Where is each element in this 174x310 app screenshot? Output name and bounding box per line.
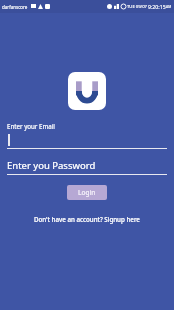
staticText: AM bbox=[166, 4, 172, 9]
button[interactable]: Login bbox=[67, 185, 107, 200]
staticText: Enter your Email bbox=[7, 122, 55, 130]
button[interactable]: Don't have an account? Signup here bbox=[32, 213, 142, 225]
button[interactable]: Enter you Password bbox=[7, 158, 167, 175]
button[interactable] bbox=[7, 133, 167, 149]
staticText: Enter you Password bbox=[7, 159, 96, 172]
staticText: 9:20:15 bbox=[148, 3, 166, 10]
staticText: darfanscore bbox=[2, 4, 28, 10]
staticText: Login bbox=[78, 188, 96, 197]
staticText: TUE 09/07 bbox=[127, 4, 147, 10]
staticText: Don't have an account? Signup here bbox=[34, 215, 140, 223]
